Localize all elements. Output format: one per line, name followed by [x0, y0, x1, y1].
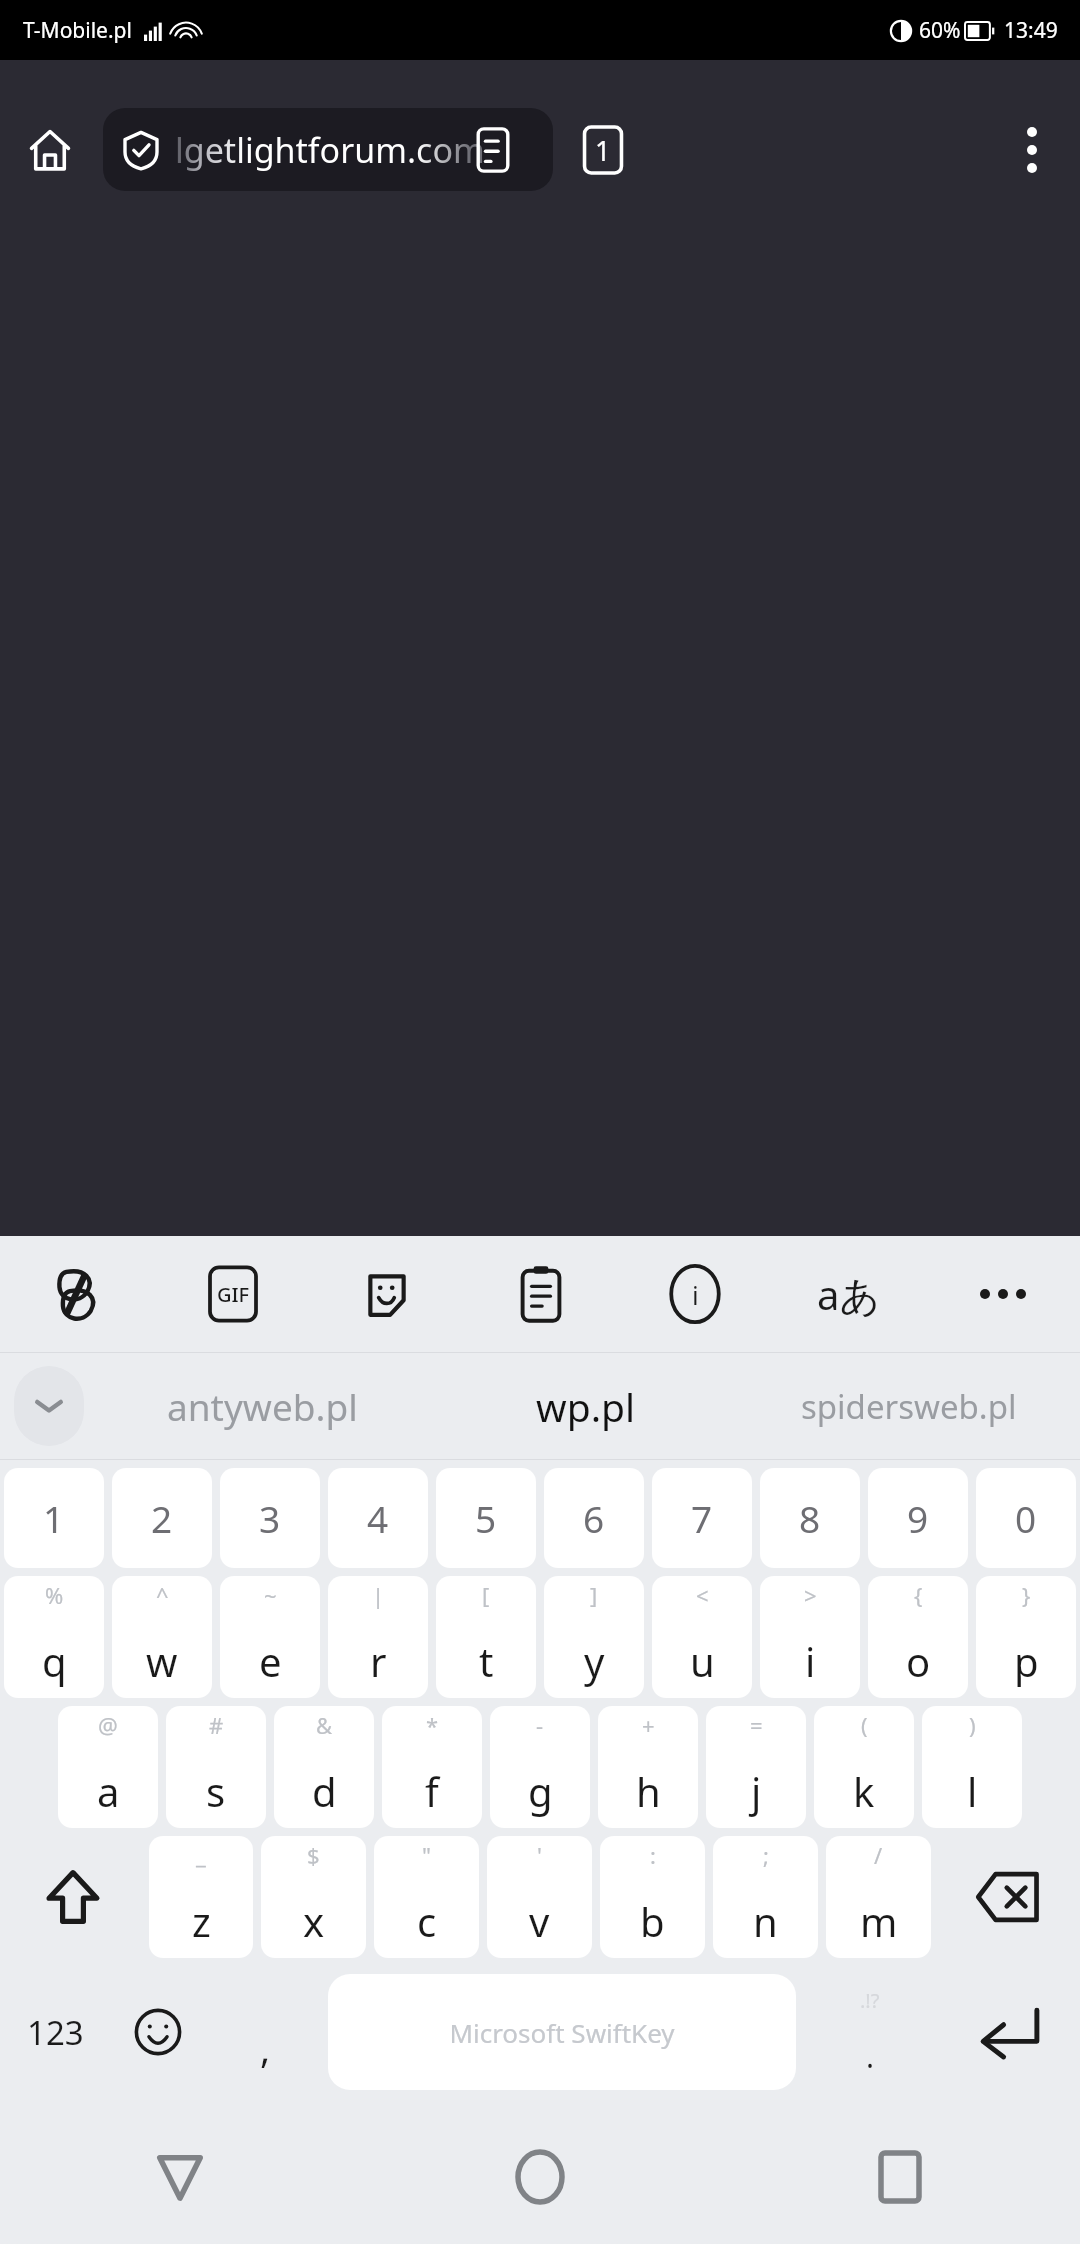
staticText: #	[209, 1710, 224, 1740]
button[interactable]: Reader view	[455, 112, 531, 188]
button[interactable]: +	[598, 1706, 698, 1828]
button[interactable]: spidersweb.pl	[747, 1353, 1070, 1459]
staticText: *	[426, 1710, 439, 1740]
button[interactable]: >	[760, 1576, 860, 1698]
staticText: a	[97, 1764, 120, 1818]
button[interactable]: Back	[0, 2110, 360, 2244]
staticText: p	[1014, 1634, 1039, 1688]
button[interactable]: Tabs	[565, 112, 641, 188]
staticText: b	[640, 1894, 665, 1948]
button[interactable]: More options	[994, 112, 1070, 188]
staticText: q	[42, 1634, 67, 1688]
staticText: 6	[583, 1493, 605, 1543]
button[interactable]: Microsoft SwiftKey	[328, 1974, 796, 2090]
button[interactable]: ,	[206, 1962, 324, 2102]
staticText: :	[650, 1840, 656, 1870]
button[interactable]: Info	[618, 1236, 772, 1352]
button[interactable]: 3	[220, 1468, 320, 1568]
staticText: l	[967, 1764, 978, 1818]
staticText: _	[196, 1840, 206, 1870]
button[interactable]: (	[814, 1706, 914, 1828]
button[interactable]: |	[328, 1576, 428, 1698]
staticText: ~	[264, 1580, 277, 1610]
button[interactable]: @	[58, 1706, 158, 1828]
button[interactable]: 2	[112, 1468, 212, 1568]
staticText: h	[636, 1764, 661, 1818]
staticText: ,	[260, 2022, 271, 2074]
button[interactable]: &	[274, 1706, 374, 1828]
button[interactable]: "	[374, 1836, 479, 1958]
button[interactable]: Stickers	[310, 1236, 464, 1352]
button[interactable]: :	[600, 1836, 705, 1958]
button[interactable]: <	[652, 1576, 752, 1698]
button[interactable]: Backspace	[935, 1832, 1080, 1962]
staticText: 0	[1015, 1493, 1037, 1543]
button[interactable]: ]	[544, 1576, 644, 1698]
staticText: &	[316, 1710, 333, 1740]
button[interactable]: 4	[328, 1468, 428, 1568]
staticText: g	[528, 1764, 553, 1818]
button[interactable]: )	[922, 1706, 1022, 1828]
staticText: 1	[595, 132, 611, 169]
staticText: 8	[799, 1493, 821, 1543]
staticText: aあ	[817, 1267, 881, 1322]
button[interactable]: [	[436, 1576, 536, 1698]
button[interactable]: *	[382, 1706, 482, 1828]
button[interactable]: Languages	[772, 1236, 926, 1352]
button[interactable]: 1	[4, 1468, 104, 1568]
button[interactable]: _	[149, 1836, 253, 1958]
button[interactable]: .!?	[800, 1962, 940, 2102]
staticText: spidersweb.pl	[801, 1384, 1017, 1429]
staticText: k	[853, 1764, 875, 1818]
button[interactable]: $	[261, 1836, 366, 1958]
button[interactable]: Emoji	[110, 1962, 206, 2102]
staticText: wp.pl	[536, 1380, 636, 1433]
button[interactable]: 0	[976, 1468, 1076, 1568]
button[interactable]: }	[976, 1576, 1076, 1698]
staticText: -	[536, 1710, 544, 1740]
button[interactable]: ~	[220, 1576, 320, 1698]
button[interactable]: 5	[436, 1468, 536, 1568]
button[interactable]: Recent apps	[720, 2110, 1080, 2244]
button[interactable]: 7	[652, 1468, 752, 1568]
button[interactable]: {	[868, 1576, 968, 1698]
staticText: r	[370, 1634, 387, 1688]
button[interactable]: Shift	[0, 1832, 145, 1962]
button[interactable]: /	[826, 1836, 931, 1958]
button[interactable]: Home	[360, 2110, 720, 2244]
button[interactable]: ;	[713, 1836, 818, 1958]
button[interactable]: '	[487, 1836, 592, 1958]
staticText: 9	[907, 1493, 929, 1543]
staticText: (	[861, 1710, 868, 1740]
button[interactable]: 9	[868, 1468, 968, 1568]
staticText: s	[206, 1764, 226, 1818]
button[interactable]: Clipboard toggle	[0, 1236, 155, 1352]
staticText: o	[906, 1634, 931, 1688]
button[interactable]: lgetlightforum.com	[103, 108, 553, 191]
button[interactable]: -	[490, 1706, 590, 1828]
button[interactable]: #	[166, 1706, 266, 1828]
staticText: .	[866, 2036, 875, 2077]
staticText: n	[753, 1894, 778, 1948]
button[interactable]: GIF	[155, 1236, 310, 1352]
button[interactable]: %	[4, 1576, 104, 1698]
staticText: 123	[27, 2010, 84, 2055]
staticText: m	[860, 1894, 898, 1948]
button[interactable]: ^	[112, 1576, 212, 1698]
button[interactable]: antyweb.pl	[100, 1353, 424, 1459]
staticText: 1	[43, 1493, 65, 1543]
button[interactable]: Enter	[940, 1962, 1080, 2102]
button[interactable]: 8	[760, 1468, 860, 1568]
button[interactable]: 123	[0, 1962, 110, 2102]
button[interactable]: Home	[12, 112, 88, 188]
staticText: ^	[156, 1580, 169, 1610]
staticText: e	[259, 1634, 282, 1688]
button[interactable]: =	[706, 1706, 806, 1828]
button[interactable]: 6	[544, 1468, 644, 1568]
staticText: }	[1022, 1580, 1031, 1610]
button[interactable]: wp.pl	[424, 1353, 747, 1459]
button[interactable]: Clipboard	[464, 1236, 618, 1352]
button[interactable]: More	[926, 1236, 1080, 1352]
button[interactable]: Expand suggestions	[14, 1366, 84, 1446]
staticText: <	[696, 1580, 709, 1610]
